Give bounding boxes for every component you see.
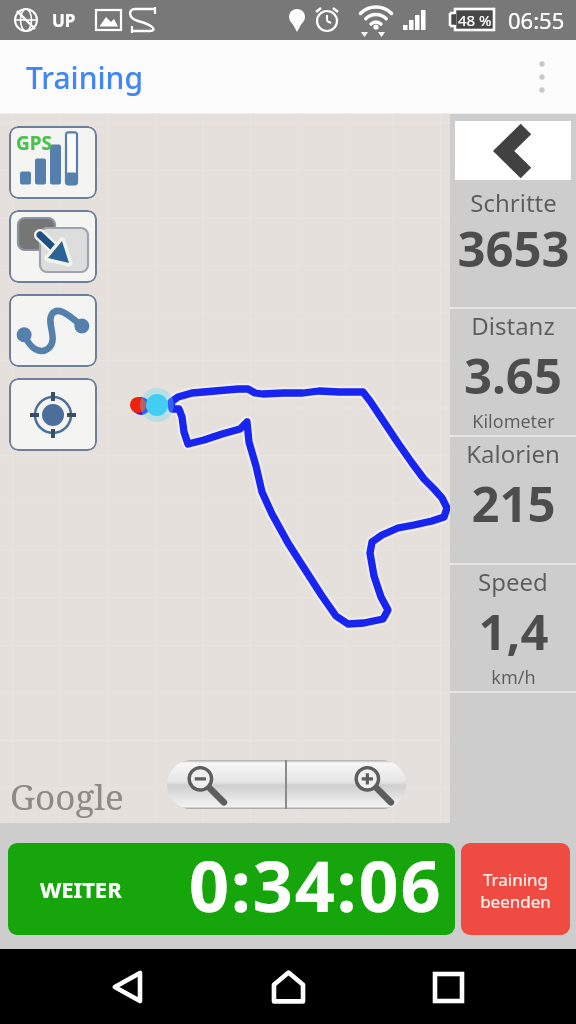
- staticText: WEITER: [40, 874, 122, 904]
- staticText: km/h: [491, 665, 536, 690]
- staticText: Schritte: [470, 186, 557, 219]
- staticText: Training: [26, 57, 144, 98]
- button[interactable]: Layers: [9, 210, 97, 283]
- button[interactable]: Back: [94, 953, 162, 1021]
- staticText: Distanz: [471, 309, 555, 342]
- staticText: Training beenden: [480, 868, 551, 913]
- staticText: 06:55: [508, 5, 565, 35]
- staticText: 0:34:06: [189, 843, 443, 929]
- staticText: 3.65: [464, 342, 562, 409]
- staticText: 215: [471, 470, 556, 537]
- staticText: 48 %: [458, 10, 492, 30]
- button[interactable]: Zoom in: [287, 760, 406, 809]
- button[interactable]: GPS signal: [9, 126, 97, 199]
- button[interactable]: WEITER: [8, 843, 455, 935]
- staticText: 1,4: [478, 598, 549, 665]
- staticText: Kalorien: [466, 437, 560, 470]
- button[interactable]: Route: [9, 294, 97, 367]
- staticText: Kilometer: [472, 409, 555, 434]
- staticText: Google: [10, 773, 124, 821]
- button[interactable]: Home: [254, 953, 322, 1021]
- staticText: 3653: [457, 215, 570, 282]
- button[interactable]: Recent apps: [414, 953, 482, 1021]
- button[interactable]: My location: [9, 378, 97, 451]
- button[interactable]: More options: [515, 50, 569, 104]
- staticText: UP: [52, 9, 76, 32]
- staticText: GPS: [16, 130, 53, 156]
- button[interactable]: Zoom out: [167, 760, 285, 809]
- button[interactable]: Training beenden: [461, 843, 570, 935]
- staticText: Speed: [478, 565, 548, 598]
- button[interactable]: Collapse panel: [455, 121, 571, 180]
